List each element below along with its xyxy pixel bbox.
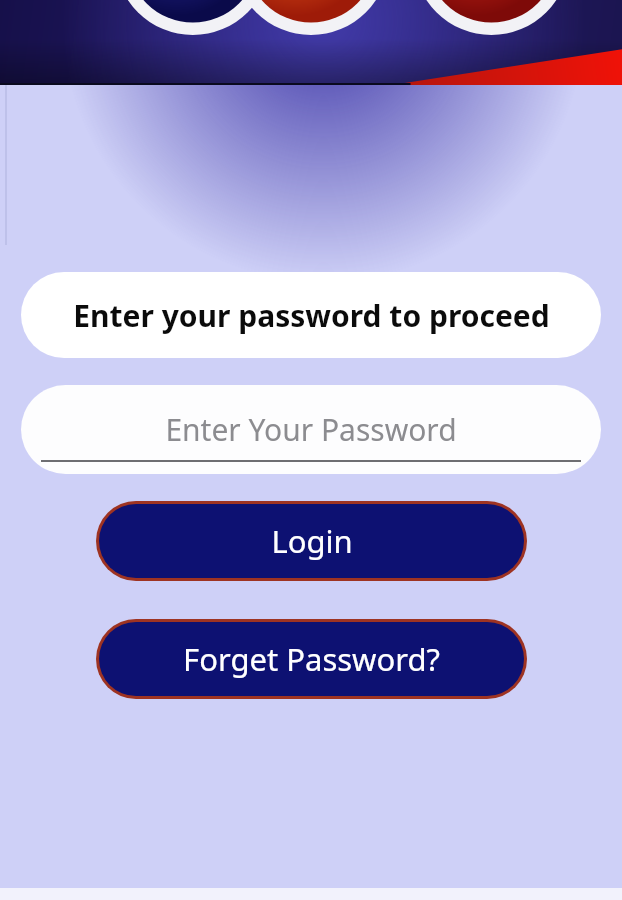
- staticText: Enter your password to proceed: [73, 295, 550, 336]
- staticText: Login: [271, 520, 353, 562]
- button[interactable]: Forget Password?: [99, 622, 524, 696]
- button[interactable]: Enter your password to proceed: [21, 272, 601, 358]
- button[interactable]: Login: [99, 504, 524, 578]
- staticText: Enter Your Password: [165, 409, 457, 450]
- button[interactable]: Enter Your Password: [21, 385, 601, 474]
- staticText: Forget Password?: [183, 638, 440, 680]
